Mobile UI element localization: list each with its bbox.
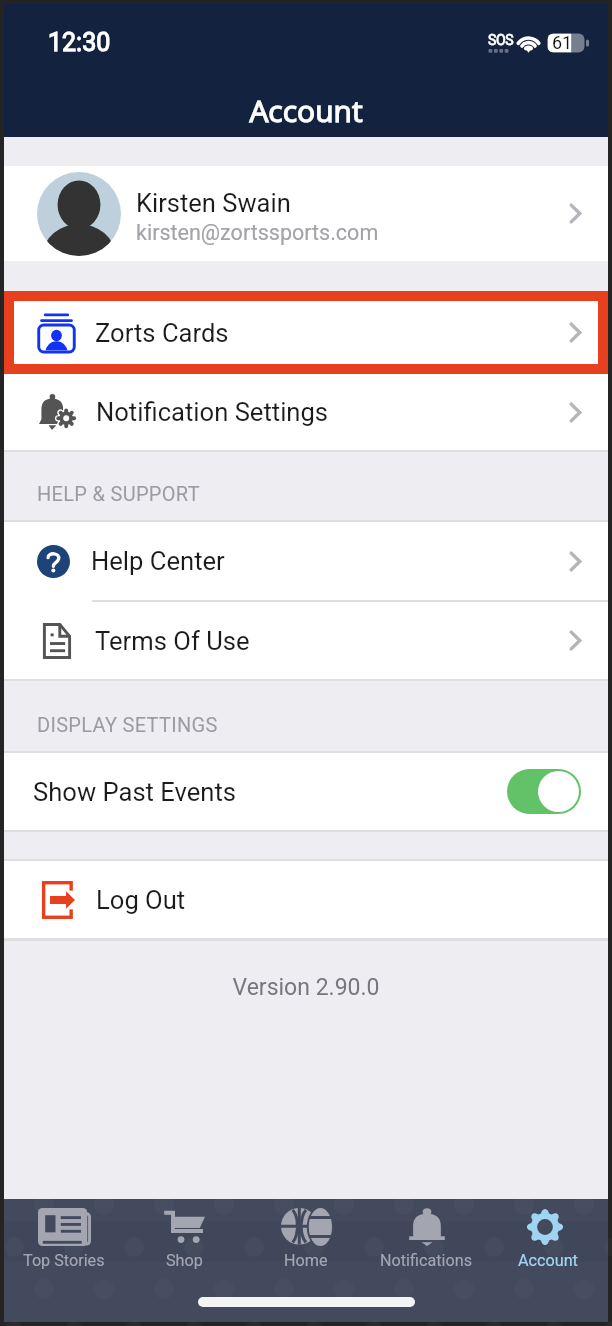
staticText: HELP & SUPPORT [37, 482, 200, 505]
staticText: 12:30 [48, 28, 111, 57]
staticText: 61 [552, 32, 573, 53]
staticText: Shop [166, 1251, 203, 1270]
staticText: SOS [488, 32, 514, 48]
button[interactable]: Kirsten Swain [4, 166, 608, 261]
staticText: Top Stories [23, 1251, 105, 1270]
staticText: Version 2.90.0 [4, 974, 608, 1001]
button[interactable]: Zorts Cards [14, 301, 598, 364]
button[interactable]: Shop [124, 1204, 245, 1270]
button[interactable]: Notifications [366, 1204, 487, 1270]
button[interactable]: Home [245, 1204, 366, 1270]
button[interactable]: Terms Of Use [4, 602, 608, 679]
staticText: Show Past Events [33, 777, 237, 807]
button[interactable]: Help Center [4, 522, 608, 600]
staticText: DISPLAY SETTINGS [37, 713, 218, 736]
button[interactable]: Account [487, 1204, 608, 1270]
staticText: Help Center [91, 546, 225, 576]
button[interactable]: Top Stories [4, 1204, 124, 1270]
staticText: Zorts Cards [95, 318, 229, 348]
button[interactable]: Notification Settings [4, 374, 608, 450]
button[interactable]: Log Out [4, 861, 608, 938]
staticText: Account [518, 1251, 578, 1270]
staticText: Home [284, 1251, 328, 1270]
staticText: Kirsten Swain [136, 188, 291, 218]
button[interactable]: Show Past Events toggle [507, 769, 581, 814]
button[interactable]: Show Past Events [4, 753, 608, 830]
staticText: Terms Of Use [95, 626, 250, 656]
staticText: Notification Settings [96, 397, 329, 427]
staticText: Account [4, 90, 608, 131]
staticText: Log Out [96, 885, 186, 915]
staticText: Notifications [380, 1251, 473, 1270]
staticText: kirsten@zortssports.com [136, 220, 379, 245]
